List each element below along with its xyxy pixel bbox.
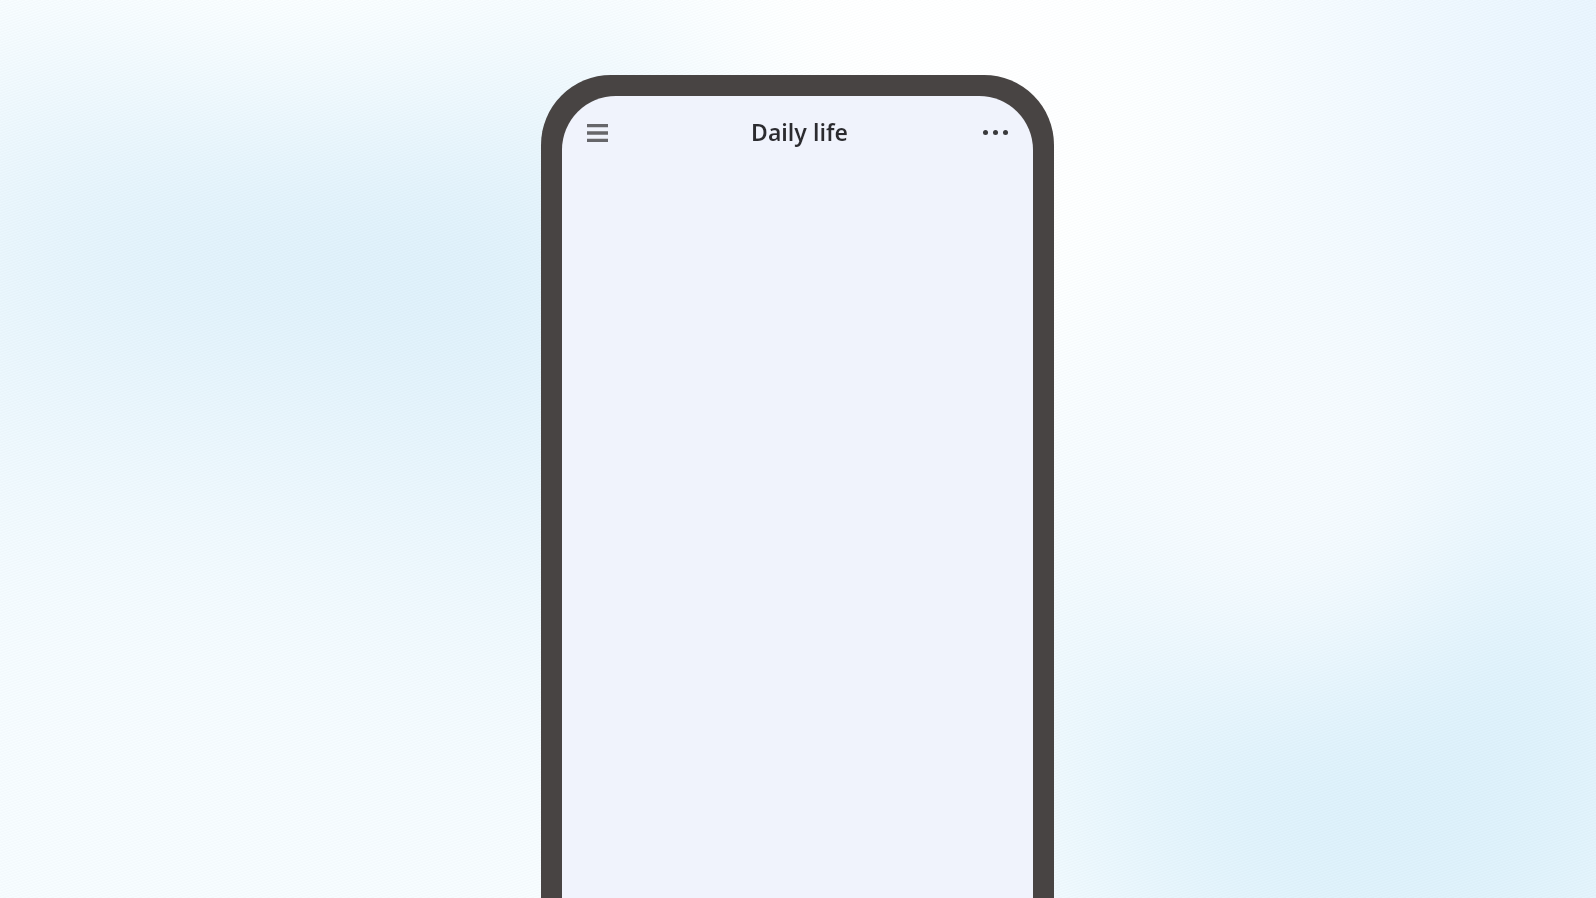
staticText: Daily life — [751, 116, 848, 147]
button[interactable]: Open navigation menu — [575, 111, 619, 155]
button[interactable]: More options — [973, 110, 1017, 154]
